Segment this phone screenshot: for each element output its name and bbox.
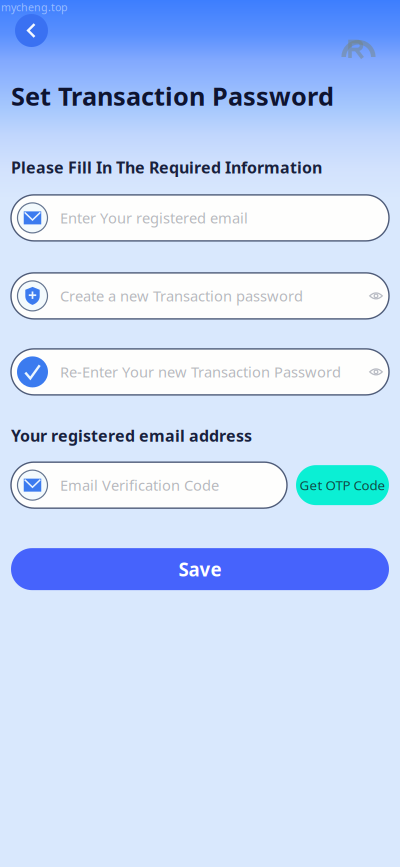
staticText: Set Transaction Password [11,79,334,113]
staticText: Please Fill In The Required Information [11,157,322,178]
button[interactable]: Show password [369,291,389,301]
staticText: Email Verification Code [60,475,219,495]
button[interactable]: Save [11,548,389,590]
button[interactable]: Get OTP Code [296,465,389,505]
staticText: Get OTP Code [299,476,385,494]
button[interactable]: Back [15,14,48,47]
staticText: mycheng.top [1,0,68,14]
staticText: Save [178,557,221,581]
staticText: Enter Your registered email [60,208,248,228]
staticText: Re-Enter Your new Transaction Password [60,362,341,382]
staticText: Create a new Transaction password [60,286,303,306]
staticText: Your registered email address [11,425,252,446]
button[interactable]: Show password [369,367,389,377]
